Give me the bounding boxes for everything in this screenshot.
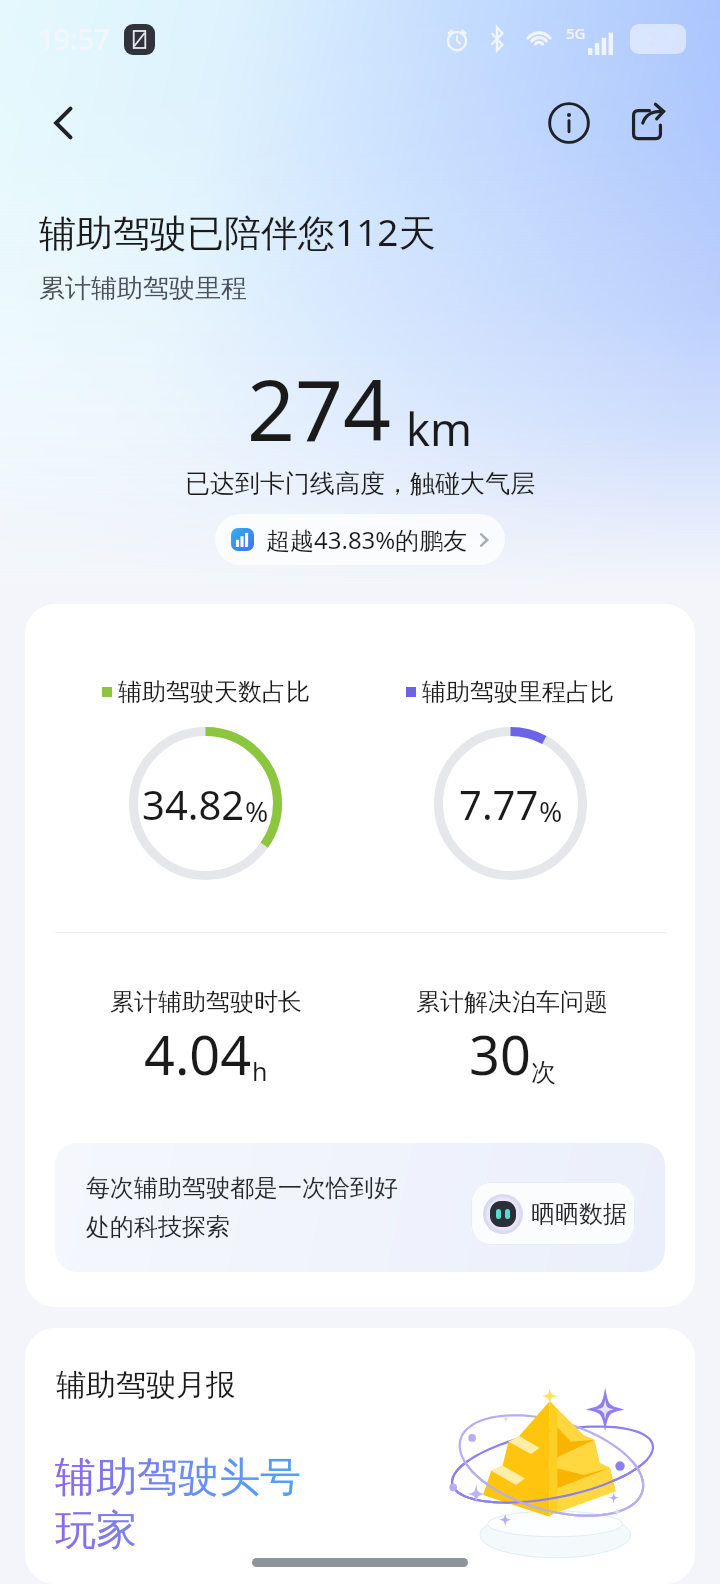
button[interactable]: Back (34, 93, 94, 153)
staticText: 辅助驾驶里程占比 (422, 677, 614, 707)
staticText: 辅助驾驶头号 玩家 (55, 1452, 301, 1556)
staticText: 30 (469, 1017, 531, 1091)
staticText: 累计解决泊车问题 (416, 987, 608, 1017)
staticText: 34.82 (142, 777, 245, 831)
staticText: 晒晒数据 (531, 1199, 627, 1229)
staticText: 辅助驾驶天数占比 (118, 677, 310, 707)
staticText: 5G (566, 23, 586, 43)
button[interactable]: 晒晒数据 (471, 1182, 635, 1245)
staticText: 累计辅助驾驶时长 (110, 987, 302, 1017)
button[interactable]: Info (540, 94, 598, 152)
button[interactable]: Share (618, 94, 676, 152)
staticText: % (245, 792, 269, 830)
staticText: h (252, 1054, 268, 1088)
staticText: 每次辅助驾驶都是一次恰到好 处的科技探索 (86, 1173, 398, 1242)
staticText: 累计辅助驾驶里程 (39, 272, 247, 305)
staticText: 274 (247, 351, 392, 465)
button[interactable]: 超越43.83%的鹏友 (215, 514, 505, 565)
staticText: 19:57 (38, 20, 110, 58)
staticText: 超越43.83%的鹏友 (266, 523, 468, 556)
staticText: 已达到卡门线高度，触碰大气层 (0, 468, 720, 499)
staticText: 4.04 (144, 1017, 252, 1091)
staticText: 次 (531, 1057, 556, 1088)
staticText: km (406, 398, 473, 459)
staticText: 辅助驾驶月报 (56, 1366, 236, 1404)
staticText: 7.77 (459, 777, 539, 831)
staticText: 辅助驾驶已陪伴您112天 (39, 206, 436, 257)
staticText: % (539, 792, 563, 830)
